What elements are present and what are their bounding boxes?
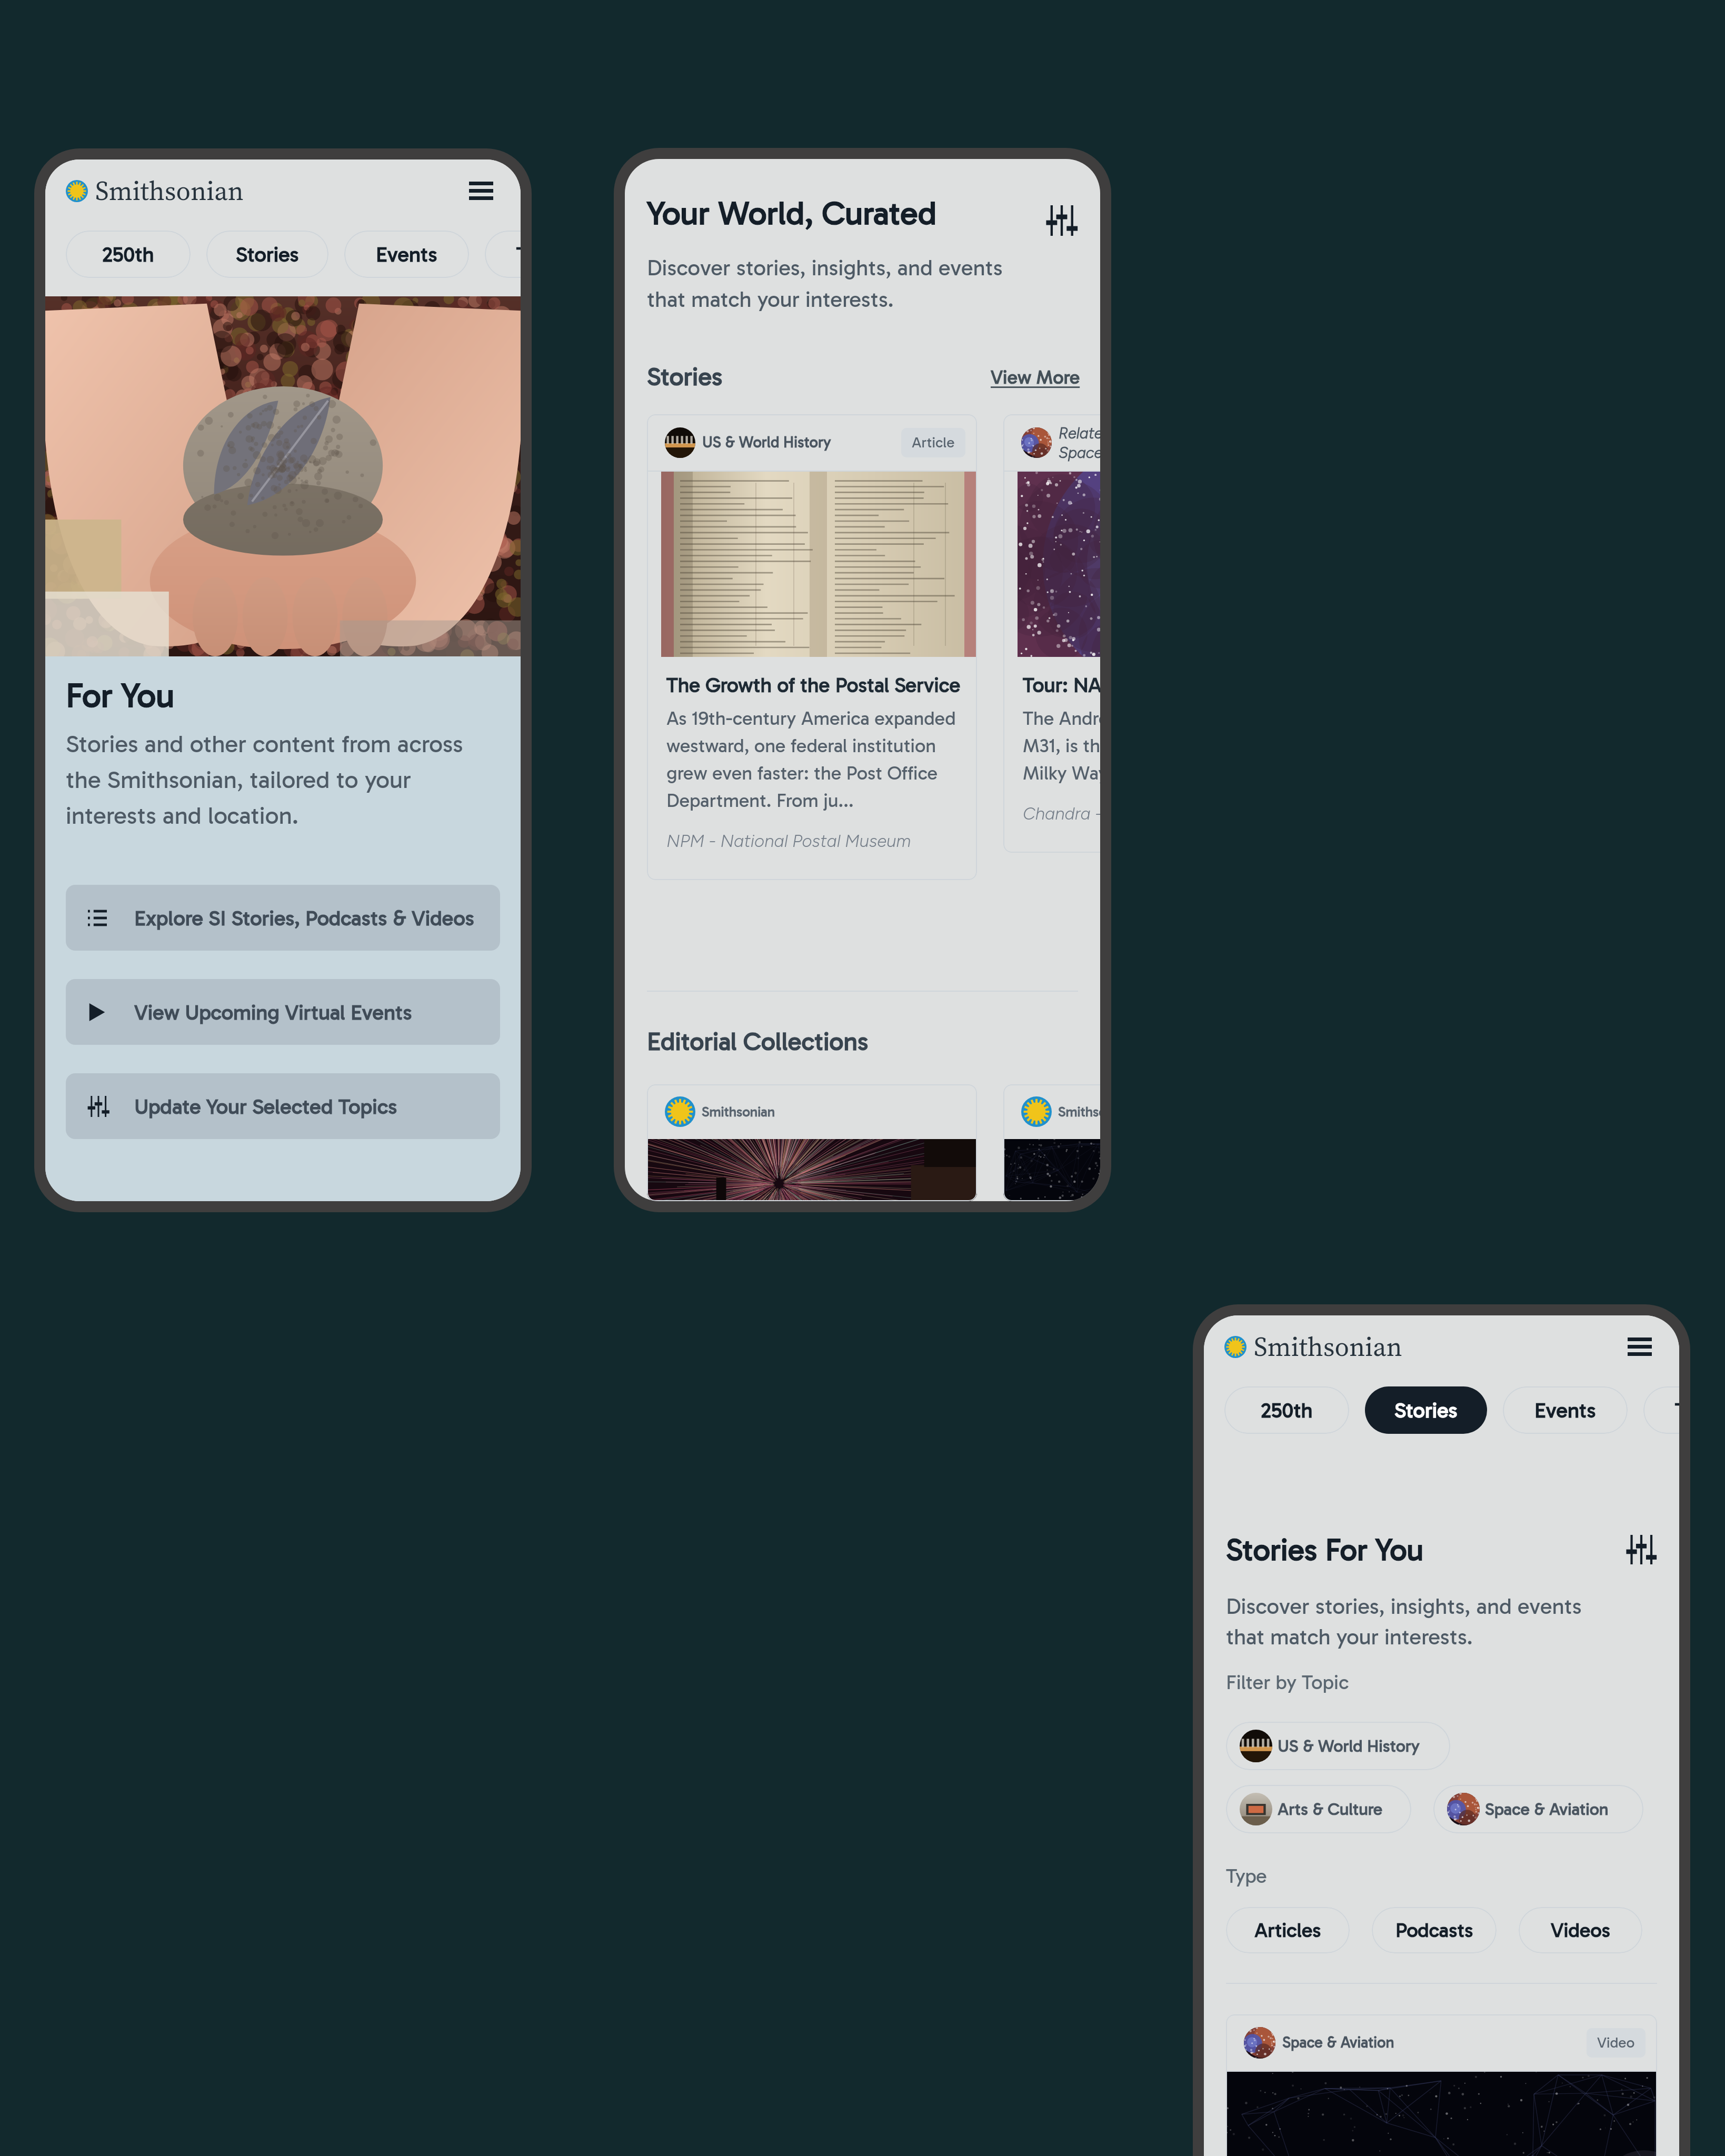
staticText: Stories For You — [1226, 1531, 1424, 1568]
staticText: Topics — [1675, 1398, 1679, 1423]
staticText: Related Space & Aviation — [1059, 424, 1100, 462]
staticText: Smithsonian — [1254, 1329, 1402, 1365]
staticText: Video — [1597, 2034, 1635, 2052]
button[interactable]: US & World History — [1226, 1722, 1450, 1770]
staticText: Space & Aviation — [1282, 2033, 1394, 2052]
button[interactable]: Space & Aviation — [1226, 2014, 1657, 2156]
button[interactable]: Events — [344, 231, 469, 278]
staticText: Stories and other content from across th… — [66, 730, 500, 830]
button[interactable]: Stories — [206, 231, 328, 278]
button[interactable]: Smithsonian — [1003, 1084, 1100, 1201]
staticText: Update Your Selected Topics — [134, 1094, 397, 1119]
button[interactable]: Arts & Culture — [1226, 1785, 1411, 1833]
staticText: Your World, Curated — [647, 194, 937, 233]
staticText: Arts & Culture — [1278, 1799, 1383, 1819]
staticText: Events — [376, 242, 437, 267]
button[interactable]: Filters — [1626, 1534, 1657, 1565]
staticText: The Growth of the Postal Service — [666, 673, 966, 697]
staticText: Filter by Topic — [1226, 1670, 1349, 1694]
staticText: Smithsonian — [702, 1104, 775, 1120]
button[interactable]: Articles — [1226, 1907, 1350, 1953]
staticText: Articles — [1254, 1918, 1321, 1942]
button[interactable]: 250th — [1224, 1386, 1349, 1434]
staticText: 250th — [1261, 1398, 1313, 1423]
staticText: For You — [66, 675, 175, 716]
staticText: Editorial Collections — [647, 1026, 869, 1057]
staticText: Stories — [236, 242, 299, 267]
button[interactable]: Open menu — [463, 172, 500, 209]
staticText: Article — [912, 434, 955, 452]
staticText: US & World History — [1278, 1736, 1420, 1756]
staticText: Topics — [516, 242, 521, 267]
button[interactable]: Related Space & Aviation — [1003, 414, 1100, 853]
staticText: As 19th-century America expanded westwar… — [666, 707, 956, 812]
button[interactable]: Smithsonian — [647, 1084, 977, 1201]
staticText: US & World History — [702, 433, 860, 452]
button[interactable]: View Upcoming Virtual Events — [66, 979, 500, 1045]
staticText: Space & Aviation — [1485, 1799, 1609, 1819]
button[interactable]: Smithsonian — [66, 173, 244, 209]
staticText: 250th — [102, 242, 154, 267]
button[interactable]: Topics — [1643, 1386, 1679, 1434]
button[interactable]: Stories — [1365, 1386, 1487, 1434]
button[interactable]: Space & Aviation — [1433, 1785, 1643, 1833]
button[interactable]: Smithsonian — [1224, 1329, 1402, 1365]
button[interactable]: 250th — [66, 231, 191, 278]
button[interactable]: View More — [991, 366, 1080, 388]
staticText: Stories — [1394, 1398, 1458, 1423]
staticText: Stories — [647, 362, 723, 392]
staticText: Smithsonian — [1058, 1104, 1100, 1120]
staticText: Type — [1226, 1864, 1267, 1888]
staticText: Chandra - Observatory — [1023, 803, 1100, 824]
staticText: Events — [1534, 1398, 1596, 1423]
button[interactable]: Videos — [1519, 1907, 1642, 1953]
staticText: Discover stories, insights, and events t… — [1226, 1593, 1594, 1650]
staticText: Discover stories, insights, and events t… — [647, 255, 1005, 313]
staticText: The Andromeda galaxy, known as M31, is t… — [1023, 707, 1100, 784]
button[interactable]: Filters — [1045, 204, 1078, 237]
staticText: View More — [991, 366, 1080, 388]
staticText: View Upcoming Virtual Events — [134, 1000, 412, 1025]
button[interactable]: Topics — [485, 231, 521, 278]
button[interactable]: Podcasts — [1372, 1907, 1497, 1953]
staticText: Explore SI Stories, Podcasts & Videos — [134, 905, 474, 931]
button[interactable]: Explore SI Stories, Podcasts & Videos — [66, 885, 500, 951]
button[interactable]: Events — [1503, 1386, 1628, 1434]
staticText: Videos — [1551, 1918, 1610, 1942]
staticText: Tour: NASA's New View of M31 — [1023, 673, 1100, 697]
button[interactable]: Open menu — [1621, 1328, 1658, 1365]
staticText: NPM - National Postal Museum — [666, 831, 911, 852]
button[interactable]: Update Your Selected Topics — [66, 1073, 500, 1139]
staticText: Smithsonian — [95, 173, 244, 209]
staticText: Podcasts — [1395, 1918, 1473, 1942]
button[interactable]: US & World History — [647, 414, 977, 880]
